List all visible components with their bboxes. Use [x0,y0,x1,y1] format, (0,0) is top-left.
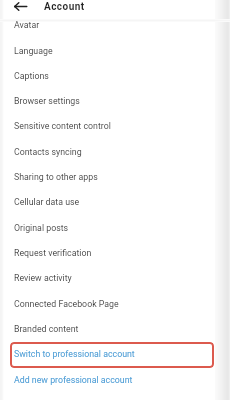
staticText: Avatar [14,20,40,30]
button[interactable]: Cellular data use [0,189,230,214]
staticText: Contacts syncing [14,147,82,157]
staticText: Original posts [14,223,69,233]
staticText: Switch to professional account [14,349,135,359]
button[interactable]: Back [10,0,30,12]
button[interactable]: Review activity [0,265,230,290]
staticText: Account [44,1,85,13]
staticText: Captions [14,71,49,81]
button[interactable]: Sensitive content control [0,113,230,138]
button[interactable]: Browser settings [0,88,230,113]
staticText: Language [14,46,53,56]
button[interactable]: Switch to professional account [10,342,214,368]
staticText: Review activity [14,273,72,283]
staticText: Add new professional account [14,375,133,385]
button[interactable]: Connected Facebook Page [0,291,230,316]
button[interactable]: Avatar [0,12,230,37]
staticText: Cellular data use [14,197,80,207]
button[interactable]: Branded content [0,316,230,341]
button[interactable]: Add new professional account [0,367,230,392]
button[interactable]: Contacts syncing [0,139,230,164]
button[interactable]: Original posts [0,215,230,240]
staticText: Browser settings [14,96,80,106]
button[interactable]: Language [0,38,230,63]
staticText: Branded content [14,324,79,334]
staticText: Sensitive content control [14,121,111,131]
staticText: Request verification [14,248,92,258]
staticText: Sharing to other apps [14,172,98,182]
button[interactable]: Captions [0,63,230,88]
button[interactable]: Request verification [0,240,230,265]
staticText: Connected Facebook Page [14,299,119,309]
button[interactable]: Sharing to other apps [0,164,230,189]
button[interactable]: Switch to professional account [0,341,230,366]
